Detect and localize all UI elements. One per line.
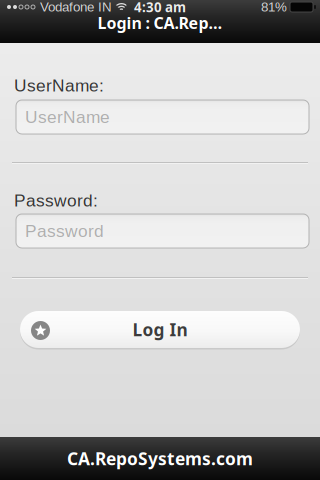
staticText: Password [25, 221, 104, 241]
staticText: UserName: [14, 76, 104, 95]
staticText: Log In [132, 318, 187, 341]
staticText: 4:30 am [134, 0, 186, 16]
staticText: UserName [25, 107, 110, 127]
button[interactable]: Log In [20, 311, 300, 348]
staticText: Vodafone IN [40, 0, 112, 14]
staticText: 81% [261, 0, 287, 14]
staticText: CA.RepoSystems.com [67, 447, 253, 470]
staticText: Login : CA.Rep… [97, 12, 222, 34]
staticText: Password: [14, 191, 98, 210]
